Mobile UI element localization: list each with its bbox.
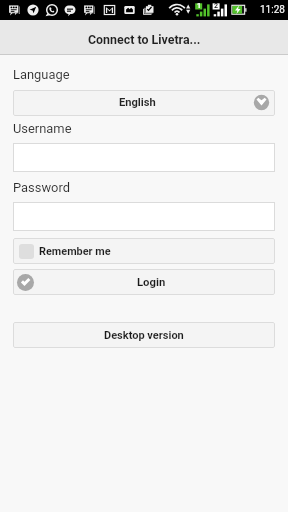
staticText: Login: [137, 276, 166, 289]
other: Login: [17, 274, 34, 291]
other: Open language list: [253, 94, 270, 111]
staticText: 11:28: [260, 4, 285, 16]
staticText: English: [119, 96, 156, 109]
staticText: Username: [13, 121, 72, 136]
button[interactable]: Desktop version: [13, 322, 275, 348]
staticText: Remember me: [39, 245, 111, 258]
button[interactable]: [13, 143, 275, 172]
staticText: Connect to Livetra...: [88, 32, 201, 47]
staticText: Password: [13, 180, 70, 195]
button[interactable]: Remember me: [13, 238, 275, 264]
button[interactable]: Login: [13, 269, 275, 295]
staticText: 1: [197, 2, 202, 10]
staticText: Desktop version: [104, 329, 184, 342]
button[interactable]: [13, 202, 275, 231]
staticText: 2: [214, 2, 219, 10]
staticText: Language: [13, 67, 70, 82]
button[interactable]: English: [13, 90, 275, 116]
